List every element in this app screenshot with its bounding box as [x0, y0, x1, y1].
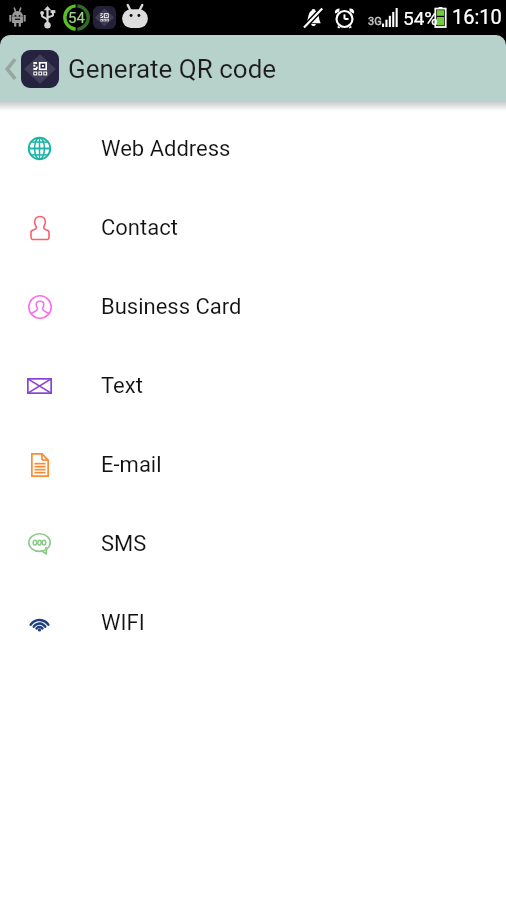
button[interactable]: Text — [0, 346, 506, 425]
staticText: 54 — [68, 9, 85, 27]
button[interactable]: SMS — [0, 504, 506, 583]
staticText: SMS — [101, 531, 147, 557]
button[interactable]: WIFI — [0, 583, 506, 662]
staticText: WIFI — [101, 610, 145, 636]
button[interactable]: E-mail — [0, 425, 506, 504]
staticText: Web Address — [101, 136, 231, 162]
staticText: E-mail — [101, 452, 162, 478]
staticText: 3G — [368, 15, 382, 28]
button[interactable]: Web Address — [0, 109, 506, 188]
staticText: Generate QR code — [68, 54, 277, 84]
button[interactable]: Business Card — [0, 267, 506, 346]
button[interactable]: Back — [0, 35, 21, 102]
staticText: Contact — [101, 215, 178, 241]
staticText: 16:10 — [452, 5, 502, 28]
staticText: Text — [101, 373, 143, 399]
button[interactable]: Contact — [0, 188, 506, 267]
staticText: 54% — [403, 7, 439, 29]
staticText: Business Card — [101, 294, 242, 320]
